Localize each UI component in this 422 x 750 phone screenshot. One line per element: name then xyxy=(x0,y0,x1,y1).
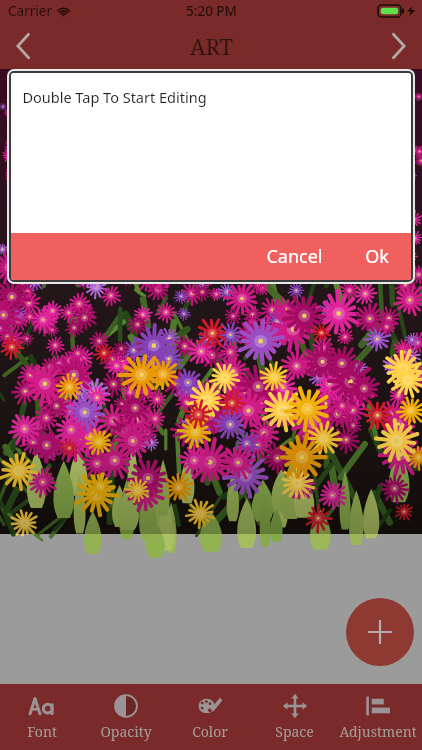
button[interactable]: Previous xyxy=(0,23,46,69)
button[interactable]: Next xyxy=(376,23,422,69)
staticText: Opacity xyxy=(100,722,152,741)
staticText: Cancel xyxy=(266,244,323,269)
staticText: Color xyxy=(192,722,228,741)
button[interactable]: Add text xyxy=(346,598,414,666)
staticText: 5:20 PM xyxy=(186,2,237,20)
staticText: Carrier xyxy=(8,2,52,20)
button[interactable]: Color xyxy=(168,684,252,750)
button[interactable]: Ok xyxy=(351,233,403,280)
button[interactable]: Font xyxy=(0,684,84,750)
button[interactable]: Double Tap To Start Editing xyxy=(11,73,411,233)
button[interactable]: Space xyxy=(252,684,336,750)
button[interactable]: Adjustment xyxy=(336,684,420,750)
staticText: Space xyxy=(275,722,314,741)
staticText: Adjustment xyxy=(339,722,417,741)
staticText: Ok xyxy=(365,244,389,269)
staticText: ART xyxy=(190,31,233,61)
button[interactable]: Opacity xyxy=(84,684,168,750)
staticText: Double Tap To Start Editing xyxy=(22,87,207,107)
button[interactable]: Cancel xyxy=(252,233,337,280)
staticText: Font xyxy=(27,722,57,741)
